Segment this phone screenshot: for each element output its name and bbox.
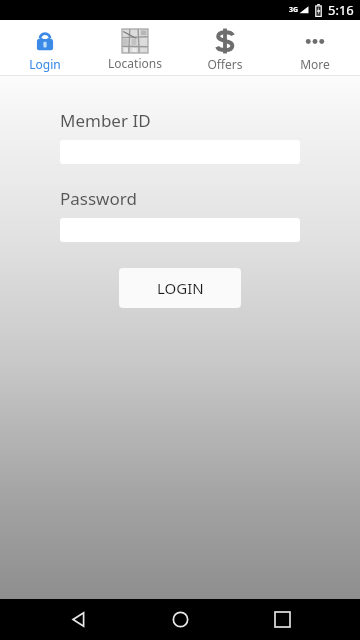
staticText: Login <box>29 56 61 72</box>
staticText: Password <box>60 187 137 210</box>
staticText: Offers <box>207 56 243 72</box>
staticText: Locations <box>108 55 162 71</box>
button[interactable]: Recent apps <box>258 599 306 640</box>
staticText: Member ID <box>60 109 151 132</box>
button[interactable]: Locations <box>90 20 180 75</box>
staticText: More <box>300 56 330 72</box>
button[interactable]: Offers <box>180 20 270 75</box>
button[interactable]: More <box>270 20 360 75</box>
button[interactable]: Home <box>156 599 204 640</box>
staticText: LOGIN <box>157 278 204 298</box>
button[interactable]: LOGIN <box>119 268 241 308</box>
button[interactable]: Login <box>0 20 90 75</box>
button[interactable]: Back <box>54 599 102 640</box>
staticText: 3G <box>289 5 299 15</box>
staticText: 5:16 <box>328 1 354 19</box>
